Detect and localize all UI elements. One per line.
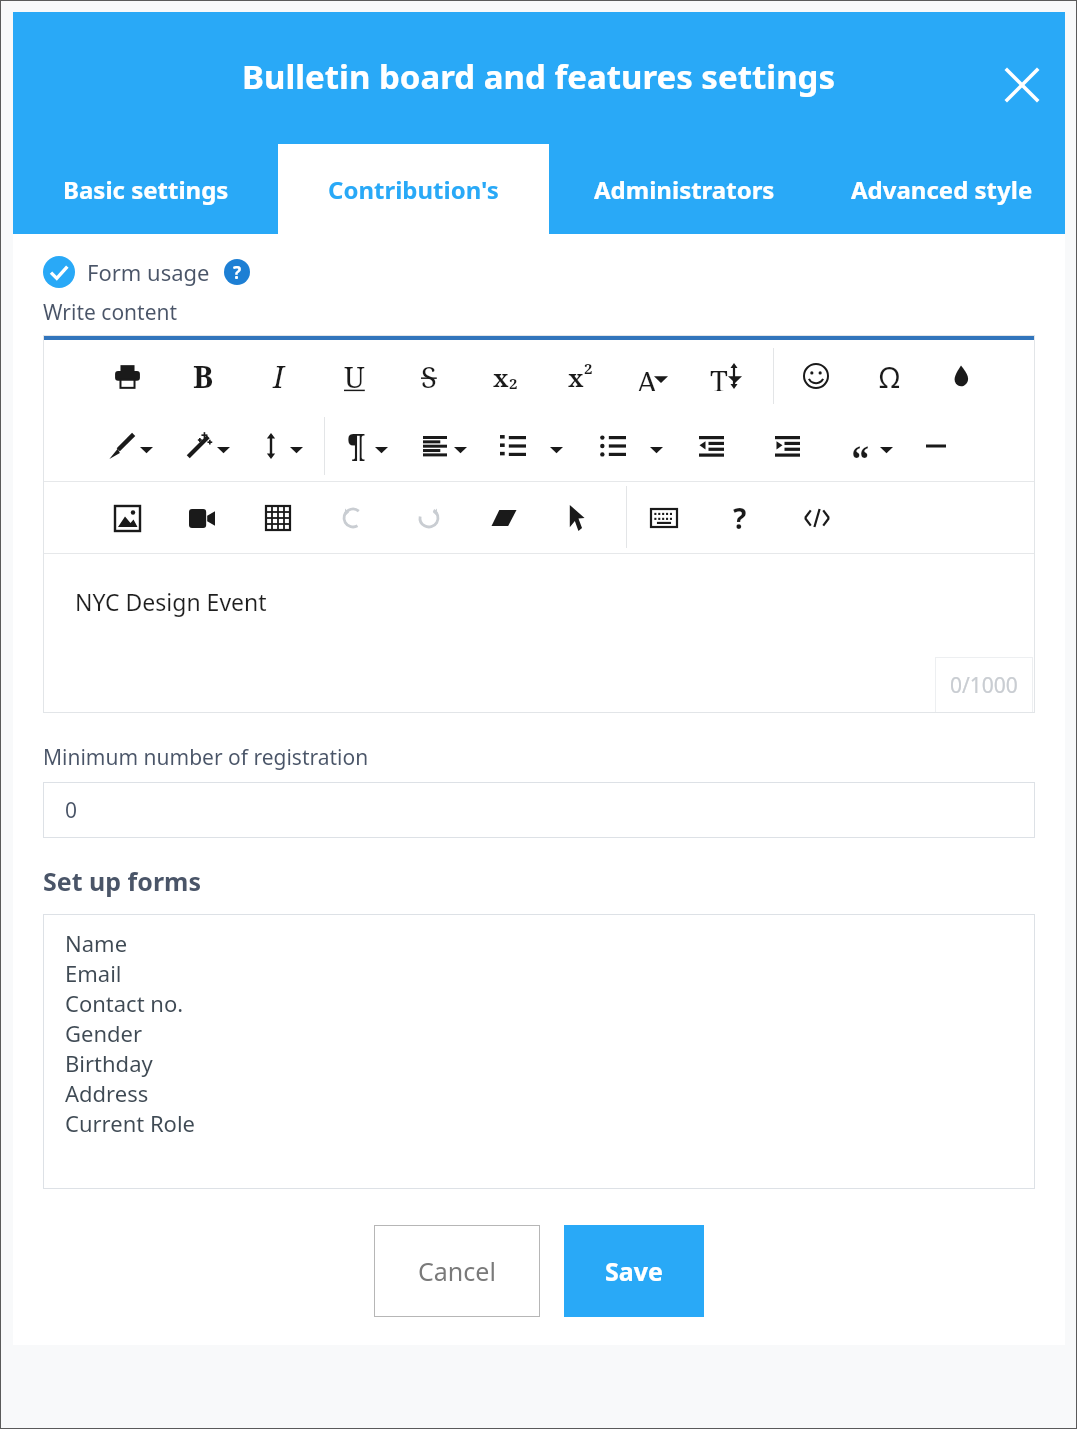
- staticText: Address: [65, 1078, 149, 1108]
- button[interactable]: Editor tool U: [333, 355, 375, 397]
- button[interactable]: Advanced style: [819, 144, 1065, 234]
- staticText: T: [710, 361, 728, 391]
- staticText: Basic settings: [63, 173, 229, 206]
- button[interactable]: 0: [43, 782, 1035, 838]
- button[interactable]: More: [448, 434, 472, 458]
- staticText: ?: [733, 499, 747, 537]
- staticText: Name: [65, 928, 128, 958]
- staticText: 2: [509, 373, 518, 393]
- staticText: 2: [584, 358, 593, 378]
- button[interactable]: Editor tool: [181, 497, 223, 539]
- button[interactable]: Editor tool: [332, 497, 374, 539]
- staticText: “: [851, 433, 870, 475]
- button[interactable]: More: [211, 434, 235, 458]
- button[interactable]: Editor tool: [414, 425, 456, 467]
- button[interactable]: Editor tool ?: [719, 497, 761, 539]
- button[interactable]: Administrators: [549, 144, 819, 234]
- button[interactable]: Editor tool: [690, 425, 732, 467]
- staticText: x: [568, 361, 584, 391]
- button[interactable]: Cancel: [374, 1225, 540, 1317]
- button[interactable]: Editor tool: [483, 497, 525, 539]
- button[interactable]: Editor tool: [766, 425, 808, 467]
- button[interactable]: More: [369, 434, 393, 458]
- button[interactable]: Editor tool “: [839, 425, 881, 467]
- staticText: Cancel: [418, 1254, 496, 1288]
- staticText: Form usage: [87, 257, 210, 287]
- button[interactable]: More: [544, 434, 568, 458]
- button[interactable]: Basic settings: [13, 144, 278, 234]
- staticText: ?: [233, 261, 242, 284]
- button[interactable]: Close: [993, 56, 1051, 114]
- button[interactable]: Editor tool: [257, 497, 299, 539]
- staticText: 0/1000: [950, 671, 1018, 700]
- button[interactable]: Editor tool: [492, 425, 534, 467]
- button[interactable]: Editor tool Ω: [868, 355, 910, 397]
- staticText: Minimum number of registration: [43, 743, 369, 772]
- button[interactable]: Editor tool: [556, 497, 598, 539]
- staticText: NYC Design Event: [75, 586, 267, 617]
- button[interactable]: More: [284, 434, 308, 458]
- staticText: Save: [605, 1254, 663, 1288]
- staticText: Bulletin board and features settings: [242, 54, 836, 99]
- staticText: Write content: [43, 298, 178, 327]
- button[interactable]: Editor tool: [592, 425, 634, 467]
- staticText: U: [344, 357, 365, 396]
- staticText: Administrators: [594, 173, 775, 206]
- button[interactable]: Editor tool: [796, 497, 838, 539]
- staticText: Advanced style: [851, 173, 1033, 206]
- staticText: 0: [65, 796, 78, 825]
- staticText: Birthday: [65, 1048, 153, 1078]
- button[interactable]: Editor tool: [106, 497, 148, 539]
- button[interactable]: Form usage: [43, 256, 250, 288]
- staticText: Gender: [65, 1018, 143, 1048]
- button[interactable]: More: [874, 434, 898, 458]
- button[interactable]: Editor tool: [100, 425, 142, 467]
- staticText: Contact no.: [65, 988, 184, 1018]
- button[interactable]: Help: [224, 259, 250, 285]
- staticText: Set up forms: [43, 864, 202, 898]
- button[interactable]: Editor tool: [630, 355, 672, 397]
- staticText: Ω: [879, 357, 900, 396]
- button[interactable]: Editor tool: [250, 425, 292, 467]
- button[interactable]: Editor tool: [408, 497, 450, 539]
- button[interactable]: Editor tool: [915, 425, 957, 467]
- button[interactable]: Save: [564, 1225, 704, 1317]
- button[interactable]: Editor tool S: [408, 355, 450, 397]
- staticText: Contribution's: [328, 173, 499, 206]
- button[interactable]: Editor tool: [643, 497, 685, 539]
- button[interactable]: Editor tool I: [258, 355, 300, 397]
- button[interactable]: Editor tool: [940, 355, 982, 397]
- staticText: A: [636, 361, 658, 391]
- button[interactable]: Editor tool: [177, 425, 219, 467]
- staticText: Current Role: [65, 1108, 195, 1138]
- button[interactable]: Editor tool: [106, 355, 148, 397]
- staticText: ¶: [347, 426, 366, 467]
- staticText: S: [421, 357, 437, 396]
- button[interactable]: More: [134, 434, 158, 458]
- button[interactable]: Editor tool B: [182, 355, 224, 397]
- staticText: I: [273, 356, 285, 397]
- button[interactable]: Editor tool ¶: [335, 425, 377, 467]
- staticText: Email: [65, 958, 122, 988]
- button[interactable]: Editor tool: [704, 355, 746, 397]
- button[interactable]: More: [644, 434, 668, 458]
- staticText: B: [193, 356, 214, 397]
- button[interactable]: Contribution's: [278, 144, 549, 234]
- button[interactable]: Editor tool: [484, 355, 526, 397]
- button[interactable]: Editor tool: [559, 355, 601, 397]
- button[interactable]: Name: [43, 914, 1035, 1189]
- staticText: x: [493, 361, 509, 391]
- button[interactable]: Editor tool: [795, 355, 837, 397]
